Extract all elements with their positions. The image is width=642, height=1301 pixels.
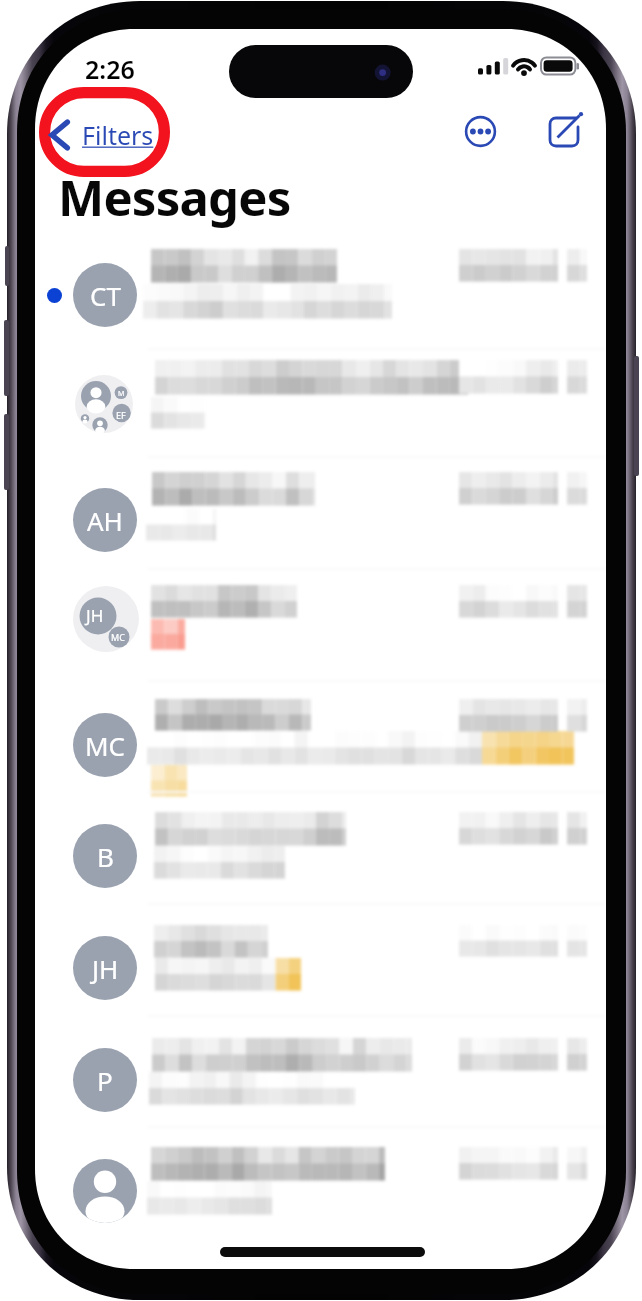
staticText: EF	[116, 409, 126, 421]
staticText: MC	[111, 631, 125, 643]
staticText: 2:26	[85, 52, 135, 86]
button[interactable]: P	[35, 1026, 606, 1134]
staticText: CT	[90, 278, 121, 313]
staticText: B	[97, 839, 114, 874]
staticText: JH	[86, 604, 104, 627]
button[interactable]: M	[35, 350, 606, 458]
staticText: P	[97, 1063, 113, 1098]
staticText: AH	[87, 503, 123, 538]
button[interactable]: CT	[35, 241, 606, 349]
staticText: M	[118, 389, 125, 399]
button[interactable]: More options	[458, 109, 503, 154]
staticText: Filters	[82, 118, 154, 152]
button[interactable]: JH	[35, 914, 606, 1022]
button[interactable]: B	[35, 802, 606, 910]
button[interactable]: Filters	[48, 115, 154, 155]
staticText: JH	[92, 951, 119, 986]
button[interactable]: JH	[35, 566, 606, 674]
staticText: Messages	[58, 164, 291, 231]
staticText: MC	[85, 728, 126, 763]
button[interactable]: MC	[35, 691, 606, 799]
button[interactable]: AH	[35, 466, 606, 574]
button[interactable]: Compose new message	[543, 109, 593, 159]
button[interactable]	[35, 1137, 606, 1245]
